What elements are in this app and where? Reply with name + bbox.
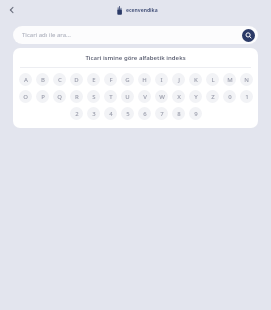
staticText: T	[109, 93, 113, 101]
staticText: 8	[177, 110, 181, 118]
button[interactable]: Ticari adı ile ara...	[13, 26, 258, 44]
staticText: 4	[109, 110, 113, 118]
staticText: 7	[160, 110, 164, 118]
staticText: 9	[194, 110, 198, 118]
button[interactable]: 6	[138, 107, 151, 120]
staticText: D	[74, 76, 79, 84]
staticText: N	[244, 76, 249, 84]
button[interactable]: I	[155, 73, 168, 86]
staticText: 6	[143, 110, 147, 118]
button[interactable]: L	[206, 73, 219, 86]
button[interactable]: Q	[53, 90, 66, 103]
button[interactable]: X	[172, 90, 185, 103]
staticText: E	[92, 76, 96, 84]
button[interactable]: F	[104, 73, 117, 86]
staticText: Ticari ismine göre alfabetik indeks	[85, 54, 186, 62]
staticText: C	[58, 76, 62, 84]
staticText: H	[142, 76, 147, 84]
button[interactable]: 2	[70, 107, 83, 120]
button[interactable]: C	[53, 73, 66, 86]
button[interactable]: 7	[155, 107, 168, 120]
button[interactable]: K	[189, 73, 202, 86]
button[interactable]: 1	[240, 90, 253, 103]
staticText: L	[211, 76, 215, 84]
staticText: Ticari adı ile ara...	[22, 31, 71, 39]
staticText: G	[125, 76, 130, 84]
button[interactable]: V	[138, 90, 151, 103]
button[interactable]: U	[121, 90, 134, 103]
button[interactable]: R	[70, 90, 83, 103]
button[interactable]: Z	[206, 90, 219, 103]
staticText: J	[178, 76, 180, 84]
button[interactable]: G	[121, 73, 134, 86]
staticText: 2	[75, 110, 79, 118]
staticText: 0	[228, 93, 232, 101]
staticText: U	[125, 93, 130, 101]
staticText: R	[75, 93, 79, 101]
button[interactable]: 5	[121, 107, 134, 120]
staticText: Y	[194, 93, 198, 101]
button[interactable]: P	[36, 90, 49, 103]
button[interactable]: A	[19, 73, 32, 86]
button[interactable]: O	[19, 90, 32, 103]
staticText: B	[41, 76, 45, 84]
button[interactable]: W	[155, 90, 168, 103]
button[interactable]: M	[223, 73, 236, 86]
staticText: 1	[245, 93, 249, 101]
staticText: I	[160, 76, 163, 84]
button[interactable]: J	[172, 73, 185, 86]
staticText: ecenvendika	[126, 7, 158, 14]
button[interactable]: S	[87, 90, 100, 103]
button[interactable]: Search	[242, 29, 255, 42]
staticText: Q	[57, 93, 62, 101]
staticText: X	[177, 93, 181, 101]
staticText: S	[92, 93, 96, 101]
staticText: V	[143, 93, 147, 101]
staticText: K	[194, 76, 198, 84]
button[interactable]: Back	[3, 1, 21, 19]
button[interactable]: 8	[172, 107, 185, 120]
staticText: 3	[92, 110, 96, 118]
staticText: M	[227, 76, 233, 84]
button[interactable]: Y	[189, 90, 202, 103]
staticText: P	[41, 93, 45, 101]
button[interactable]: H	[138, 73, 151, 86]
button[interactable]: D	[70, 73, 83, 86]
staticText: W	[159, 93, 165, 101]
staticText: F	[109, 76, 113, 84]
button[interactable]: 3	[87, 107, 100, 120]
button[interactable]: 4	[104, 107, 117, 120]
staticText: Z	[211, 93, 215, 101]
button[interactable]: 0	[223, 90, 236, 103]
button[interactable]: E	[87, 73, 100, 86]
staticText: 5	[126, 110, 130, 118]
staticText: O	[23, 93, 28, 101]
button[interactable]: T	[104, 90, 117, 103]
button[interactable]: B	[36, 73, 49, 86]
button[interactable]: N	[240, 73, 253, 86]
staticText: A	[24, 76, 28, 84]
button[interactable]: 9	[189, 107, 202, 120]
